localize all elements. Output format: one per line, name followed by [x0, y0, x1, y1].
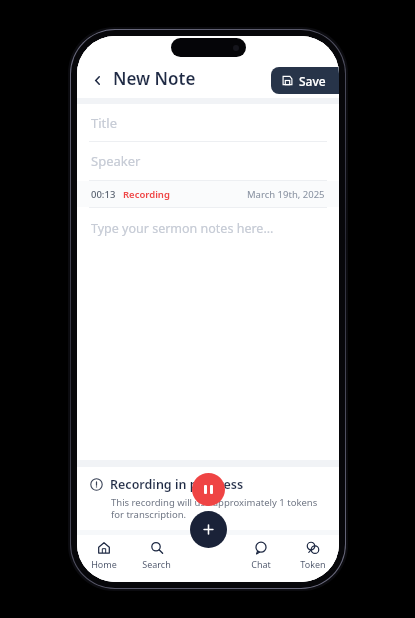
staticText: Recording in progress — [110, 476, 244, 493]
button[interactable]: Token — [287, 535, 339, 582]
button[interactable]: Back — [87, 72, 108, 89]
staticText: Home — [91, 558, 117, 570]
button[interactable]: Type your sermon notes here... — [77, 208, 339, 460]
staticText: Save — [299, 73, 326, 89]
staticText: Title — [91, 114, 117, 132]
button[interactable]: Search — [130, 535, 183, 582]
staticText: New Note — [113, 67, 196, 90]
staticText: Recording — [123, 188, 170, 201]
staticText: Search — [142, 558, 171, 570]
button[interactable]: Save — [271, 67, 339, 94]
button[interactable]: Title — [77, 104, 339, 141]
staticText: This recording will use approximately 1 … — [111, 496, 322, 521]
button[interactable]: Speaker — [77, 142, 339, 180]
staticText: March 19th, 2025 — [247, 188, 325, 201]
staticText: Type your sermon notes here... — [91, 220, 274, 237]
staticText: Speaker — [91, 152, 141, 170]
button[interactable]: Chat — [235, 535, 287, 582]
staticText: 00:13 — [91, 188, 116, 201]
button[interactable]: Pause recording — [192, 473, 225, 506]
staticText: Chat — [251, 558, 271, 570]
button[interactable]: Add new note — [190, 511, 227, 548]
button[interactable]: Home — [77, 535, 130, 582]
staticText: Token — [300, 558, 326, 570]
